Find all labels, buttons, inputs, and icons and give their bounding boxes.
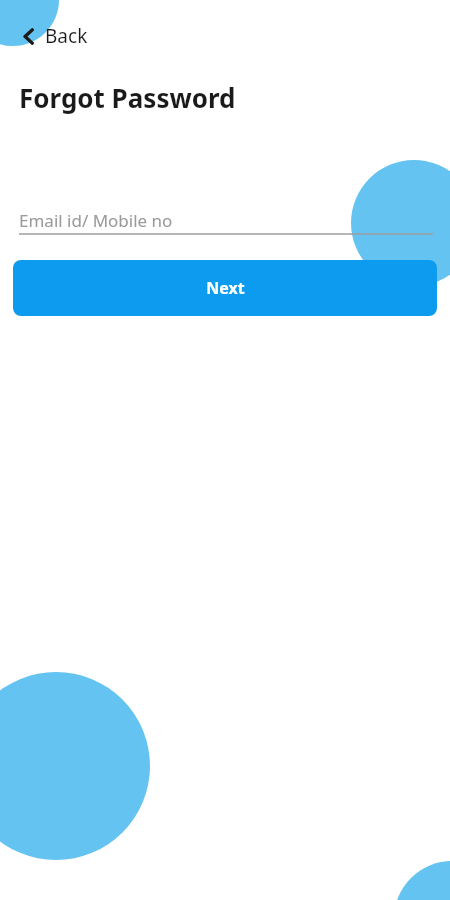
staticText: Back — [45, 23, 88, 49]
button[interactable]: Back — [19, 20, 92, 52]
staticText: Next — [206, 277, 245, 299]
button[interactable]: Next — [13, 260, 437, 316]
staticText: Email id/ Mobile no — [19, 209, 173, 232]
button[interactable]: Email id/ Mobile no — [19, 209, 433, 249]
staticText: Forgot Password — [19, 80, 236, 115]
